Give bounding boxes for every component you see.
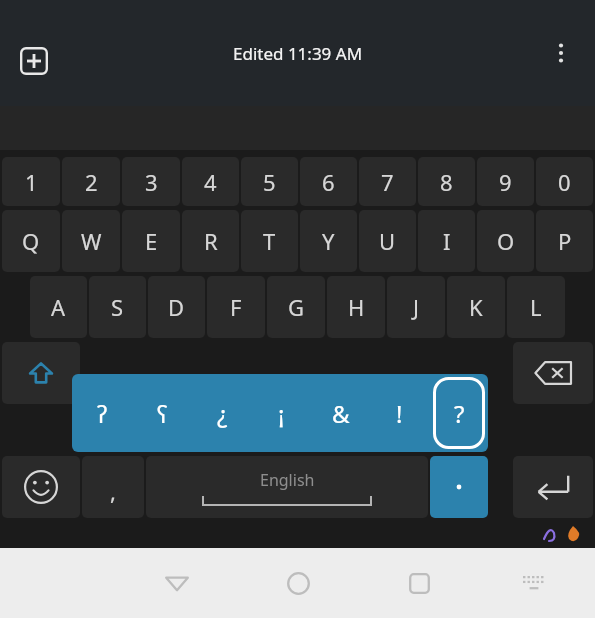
staticText: I bbox=[443, 226, 451, 256]
staticText: P bbox=[558, 226, 572, 256]
staticText: 5 bbox=[263, 167, 276, 197]
staticText: 3 bbox=[145, 167, 158, 197]
button[interactable]: 7 bbox=[359, 157, 416, 206]
button[interactable]: ! bbox=[370, 374, 429, 452]
staticText: K bbox=[469, 292, 483, 322]
button[interactable]: P bbox=[536, 210, 593, 272]
staticText: A bbox=[51, 292, 66, 322]
button[interactable]: Home bbox=[269, 548, 327, 618]
button[interactable]: G bbox=[267, 276, 325, 338]
staticText: & bbox=[332, 397, 350, 430]
staticText: ¿ bbox=[217, 397, 228, 430]
button[interactable]: I bbox=[418, 210, 475, 272]
staticText: ? bbox=[454, 397, 465, 430]
staticText: 2 bbox=[85, 167, 98, 197]
staticText: Q bbox=[22, 226, 40, 256]
button[interactable]: S bbox=[89, 276, 146, 338]
button[interactable]: Space bbox=[146, 456, 428, 518]
staticText: J bbox=[413, 292, 420, 322]
staticText: T bbox=[263, 226, 276, 256]
staticText: W bbox=[81, 226, 102, 256]
button[interactable]: & bbox=[311, 374, 370, 452]
staticText: Edited 11:39 AM bbox=[233, 42, 363, 65]
button[interactable]: Y bbox=[300, 210, 357, 272]
button[interactable]: O bbox=[477, 210, 534, 272]
button[interactable]: F bbox=[207, 276, 265, 338]
button[interactable]: L bbox=[507, 276, 565, 338]
staticText: ʔ bbox=[97, 397, 108, 430]
button[interactable]: R bbox=[182, 210, 239, 272]
button[interactable]: ʕ bbox=[132, 374, 192, 452]
button[interactable]: 1 bbox=[2, 157, 60, 206]
button[interactable]: 8 bbox=[418, 157, 475, 206]
staticText: L bbox=[530, 292, 542, 322]
button[interactable]: ¿ bbox=[192, 374, 252, 452]
staticText: G bbox=[288, 292, 305, 322]
staticText: ʕ bbox=[157, 397, 168, 430]
staticText: 6 bbox=[322, 167, 335, 197]
staticText: F bbox=[230, 292, 242, 322]
button[interactable]: , bbox=[82, 456, 144, 518]
button[interactable]: Switch keyboard bbox=[505, 548, 563, 618]
button[interactable]: Emoji bbox=[2, 456, 80, 518]
button[interactable]: T bbox=[241, 210, 298, 272]
staticText: E bbox=[145, 226, 158, 256]
button[interactable]: Backspace bbox=[513, 342, 593, 404]
button[interactable]: D bbox=[148, 276, 205, 338]
staticText: U bbox=[379, 226, 396, 256]
button[interactable]: 0 bbox=[536, 157, 593, 206]
staticText: Y bbox=[322, 226, 335, 256]
staticText: , bbox=[110, 476, 116, 506]
button[interactable]: A bbox=[30, 276, 87, 338]
button[interactable]: 9 bbox=[477, 157, 534, 206]
button[interactable]: W bbox=[62, 210, 120, 272]
button[interactable]: J bbox=[387, 276, 445, 338]
button[interactable]: 4 bbox=[182, 157, 239, 206]
button[interactable]: 6 bbox=[300, 157, 357, 206]
button[interactable]: ¡ bbox=[252, 374, 311, 452]
button[interactable]: ʔ bbox=[72, 374, 132, 452]
staticText: 7 bbox=[381, 167, 394, 197]
staticText: H bbox=[348, 292, 365, 322]
button[interactable]: More options bbox=[539, 31, 583, 75]
button[interactable]: Enter bbox=[513, 456, 593, 518]
button[interactable]: K bbox=[447, 276, 505, 338]
staticText: 4 bbox=[204, 167, 217, 197]
staticText: English bbox=[260, 469, 315, 491]
button[interactable]: Back bbox=[148, 548, 206, 618]
button[interactable]: E bbox=[122, 210, 180, 272]
button[interactable]: U bbox=[359, 210, 416, 272]
button[interactable]: H bbox=[327, 276, 385, 338]
staticText: R bbox=[204, 226, 218, 256]
button[interactable]: Period bbox=[430, 456, 488, 518]
button[interactable]: Add bbox=[16, 43, 52, 79]
staticText: ¡ bbox=[278, 397, 285, 430]
staticText: D bbox=[168, 292, 185, 322]
staticText: 8 bbox=[440, 167, 453, 197]
staticText: 1 bbox=[25, 167, 38, 197]
staticText: 9 bbox=[499, 167, 512, 197]
button[interactable]: Q bbox=[2, 210, 60, 272]
staticText: 0 bbox=[558, 167, 571, 197]
button[interactable]: 3 bbox=[122, 157, 180, 206]
button[interactable]: Shift bbox=[2, 342, 80, 404]
button[interactable]: 5 bbox=[241, 157, 298, 206]
button[interactable]: ? bbox=[429, 374, 488, 452]
staticText: ! bbox=[396, 397, 403, 430]
button[interactable]: 2 bbox=[62, 157, 120, 206]
staticText: S bbox=[111, 292, 124, 322]
staticText: O bbox=[497, 226, 515, 256]
button[interactable]: Recents bbox=[390, 548, 448, 618]
